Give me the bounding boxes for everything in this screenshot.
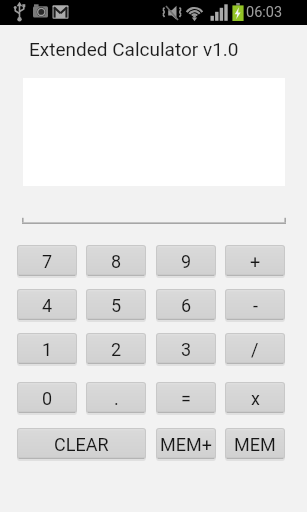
staticText: . (114, 388, 119, 409)
staticText: Extended Calculator v1.0 (29, 38, 239, 60)
staticText: 06:03 (246, 4, 283, 21)
staticText: x (251, 388, 260, 409)
staticText: + (250, 251, 261, 272)
button[interactable]: 6 (156, 289, 216, 321)
button[interactable]: 7 (17, 245, 77, 277)
button[interactable]: - (225, 289, 285, 321)
button[interactable]: 0 (17, 382, 77, 414)
button[interactable]: CLEAR (17, 428, 146, 460)
button[interactable]: MEM (225, 428, 285, 460)
button[interactable]: 8 (86, 245, 146, 277)
staticText: MEM (234, 434, 276, 455)
staticText: 2 (111, 339, 122, 360)
button[interactable]: 3 (156, 333, 216, 365)
button[interactable]: = (156, 382, 216, 414)
button[interactable]: 5 (86, 289, 146, 321)
staticText: - (253, 295, 258, 316)
staticText: 4 (42, 295, 53, 316)
button[interactable]: 1 (17, 333, 77, 365)
button[interactable]: x (225, 382, 285, 414)
button[interactable]: 4 (17, 289, 77, 321)
staticText: 7 (42, 251, 53, 272)
staticText: 0 (42, 388, 53, 409)
staticText: 9 (181, 251, 192, 272)
staticText: 1 (42, 339, 53, 360)
button[interactable]: . (86, 382, 146, 414)
button[interactable]: + (225, 245, 285, 277)
staticText: 5 (111, 295, 122, 316)
button[interactable]: MEM+ (156, 428, 216, 460)
button[interactable] (22, 194, 286, 224)
staticText: 3 (181, 339, 192, 360)
staticText: MEM+ (160, 434, 212, 455)
staticText: = (181, 388, 191, 409)
staticText: 6 (181, 295, 192, 316)
staticText: 8 (111, 251, 122, 272)
staticText: / (251, 339, 259, 360)
button[interactable]: 2 (86, 333, 146, 365)
staticText: CLEAR (54, 434, 109, 455)
button[interactable]: 9 (156, 245, 216, 277)
button[interactable]: / (225, 333, 285, 365)
